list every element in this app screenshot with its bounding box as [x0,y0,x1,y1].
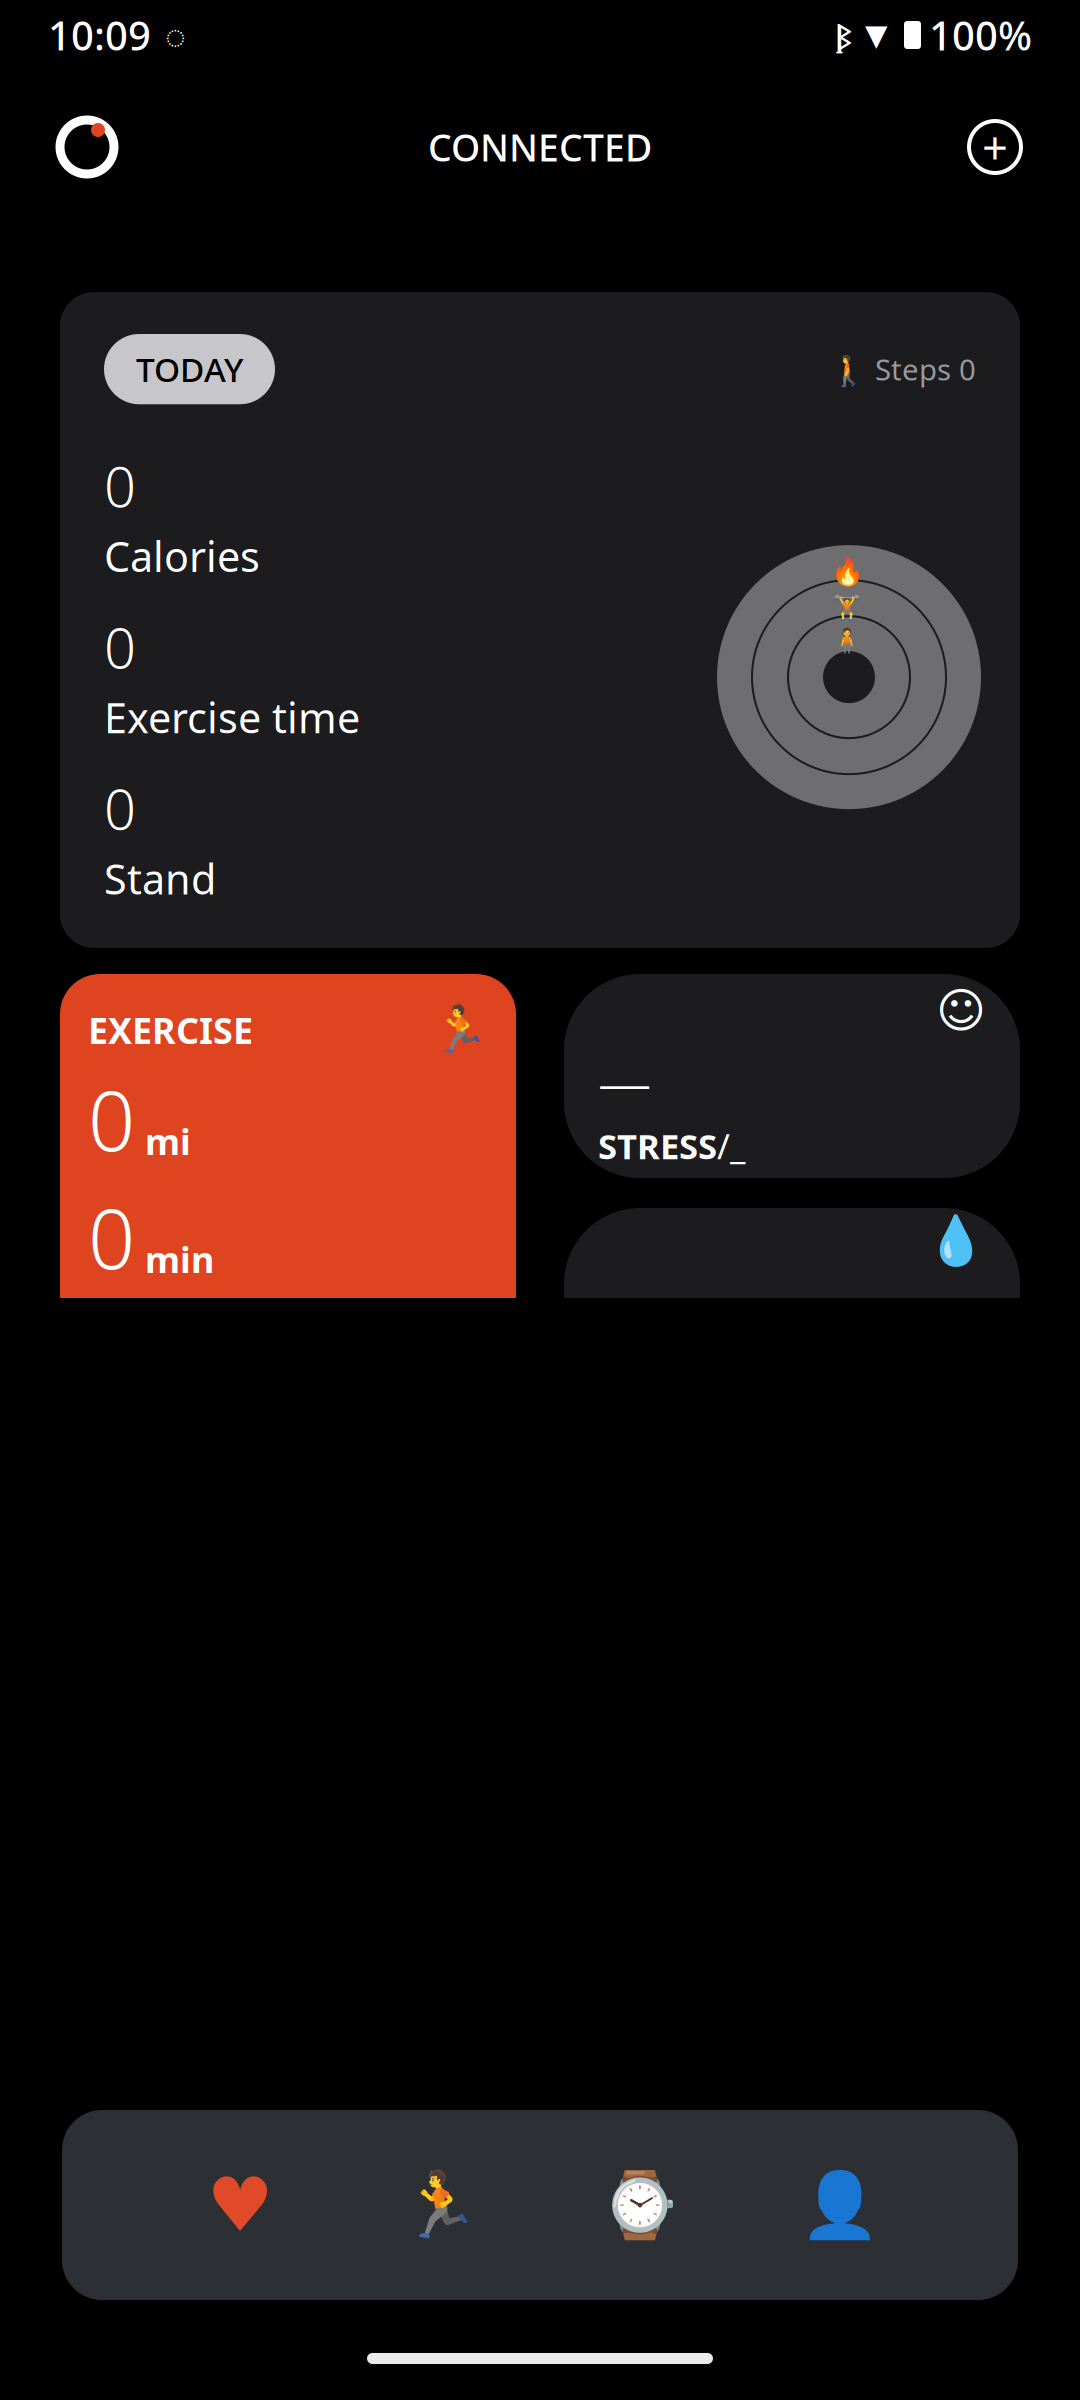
staticText: Exercise time [104,690,360,745]
staticText: 🧍 [832,627,862,654]
staticText: 0 [88,1182,135,1292]
staticText: 🏋 [832,594,862,621]
staticText: ⌚ [600,2168,680,2241]
staticText: — [598,1046,651,1117]
staticText: TODAY [136,347,243,391]
staticText: ▼ [865,18,888,52]
staticText: 10:09 [48,8,151,61]
staticText: /_ [717,1123,745,1169]
staticText: ᛒ [835,15,851,55]
staticText: 🚶 Steps 0 [830,350,976,389]
staticText: CONNECTED [428,122,652,172]
staticText: + [982,117,1008,177]
staticText: Calories [104,529,260,583]
staticText: 100% [929,8,1032,61]
button[interactable]: Activity rings [50,110,124,184]
staticText: 0 [104,448,136,523]
button[interactable]: EXERCISE [60,974,516,1436]
staticText: Stand [104,851,216,906]
staticText: ◌ [165,12,186,58]
staticText: 0 [104,609,136,684]
staticText: mi [145,1117,191,1165]
button[interactable]: Profile [740,2130,940,2280]
staticText: EXERCISE [88,1006,253,1054]
button[interactable]: 💧 [564,1208,1020,1436]
button[interactable]: Add [960,112,1030,182]
staticText: min [145,1235,214,1283]
staticText: 💧 [926,1213,986,1268]
staticText: ♥ [206,2163,273,2247]
staticText: 0 [104,771,136,845]
button[interactable]: ☺ [564,974,1020,1178]
staticText: 🔥 [830,557,863,588]
staticText: 🏃 [432,1004,488,1056]
staticText: ☺ [936,983,986,1038]
staticText: 🏃 [400,2168,480,2241]
button[interactable]: TODAY [60,292,1020,948]
staticText: 0 [88,1064,135,1174]
button[interactable]: Cycles [60,1928,516,2228]
staticText: 👤 [800,2168,880,2241]
button[interactable]: Active Score [564,1928,1020,2228]
button[interactable]: Health [140,2130,340,2280]
staticText: 98% [598,1276,749,1379]
button[interactable]: Workout [340,2130,540,2280]
button[interactable]: Device [540,2130,740,2280]
staticText: STRESS [598,1123,717,1169]
